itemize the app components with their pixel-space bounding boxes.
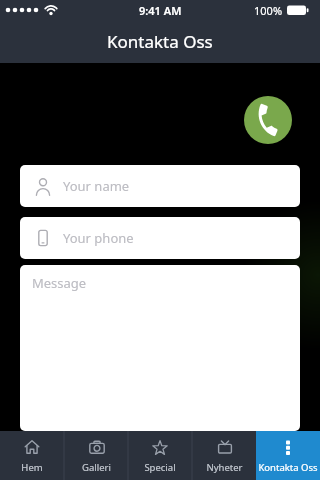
staticText: 100%	[254, 3, 283, 18]
staticText: 9:41 AM	[139, 3, 182, 18]
staticText: Nyheter	[206, 461, 243, 474]
staticText: Your phone	[63, 229, 134, 247]
button[interactable]: Galleri	[64, 431, 128, 480]
button[interactable]: Kontakta Oss	[256, 431, 320, 480]
button[interactable]: Your name	[20, 165, 300, 207]
staticText: Your name	[63, 177, 130, 195]
button[interactable]: Your phone	[20, 217, 300, 259]
staticText: Galleri	[82, 461, 111, 474]
staticText: Special	[144, 461, 176, 474]
staticText: Message	[32, 274, 87, 292]
button[interactable]: Message	[20, 265, 300, 431]
button[interactable]: Nyheter	[192, 431, 256, 480]
staticText: Hem	[21, 461, 43, 474]
button[interactable]: Special	[128, 431, 192, 480]
button[interactable]: Hem	[0, 431, 64, 480]
staticText: Kontakta Oss	[107, 30, 213, 53]
staticText: Kontakta Oss	[258, 461, 318, 474]
button[interactable]	[244, 96, 292, 144]
